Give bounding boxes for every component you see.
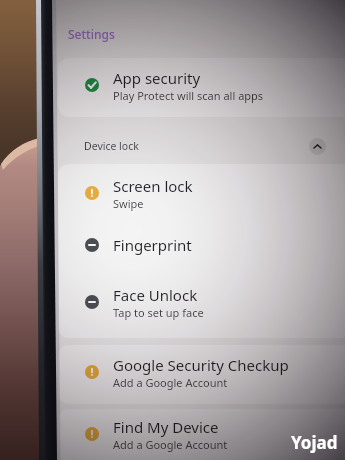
button[interactable]: Face Unlock xyxy=(85,276,345,328)
button[interactable]: App security xyxy=(85,59,345,111)
staticText: App security xyxy=(113,68,201,88)
staticText: Device lock xyxy=(84,139,139,153)
staticText: Yojad xyxy=(291,431,338,454)
button[interactable]: Google Security Checkup xyxy=(85,346,345,398)
staticText: Add a Google Account xyxy=(113,437,228,452)
staticText: Swipe xyxy=(113,196,144,211)
button[interactable]: Collapse Device lock xyxy=(309,138,326,155)
staticText: Google Security Checkup xyxy=(113,355,289,375)
staticText: Settings xyxy=(68,26,115,42)
staticText: Face Unlock xyxy=(113,285,198,305)
staticText: Tap to set up face xyxy=(113,305,204,320)
staticText: Fingerprint xyxy=(113,235,192,255)
staticText: Find My Device xyxy=(113,417,219,437)
button[interactable]: Device lock xyxy=(76,131,333,161)
staticText: Add a Google Account xyxy=(113,375,228,390)
button[interactable]: Find My Device xyxy=(85,408,345,460)
button[interactable]: Fingerprint xyxy=(85,225,345,265)
staticText: Play Protect will scan all apps xyxy=(113,88,264,103)
button[interactable]: Settings xyxy=(68,26,115,42)
button[interactable]: Screen lock xyxy=(85,167,345,219)
staticText: Screen lock xyxy=(113,176,193,196)
